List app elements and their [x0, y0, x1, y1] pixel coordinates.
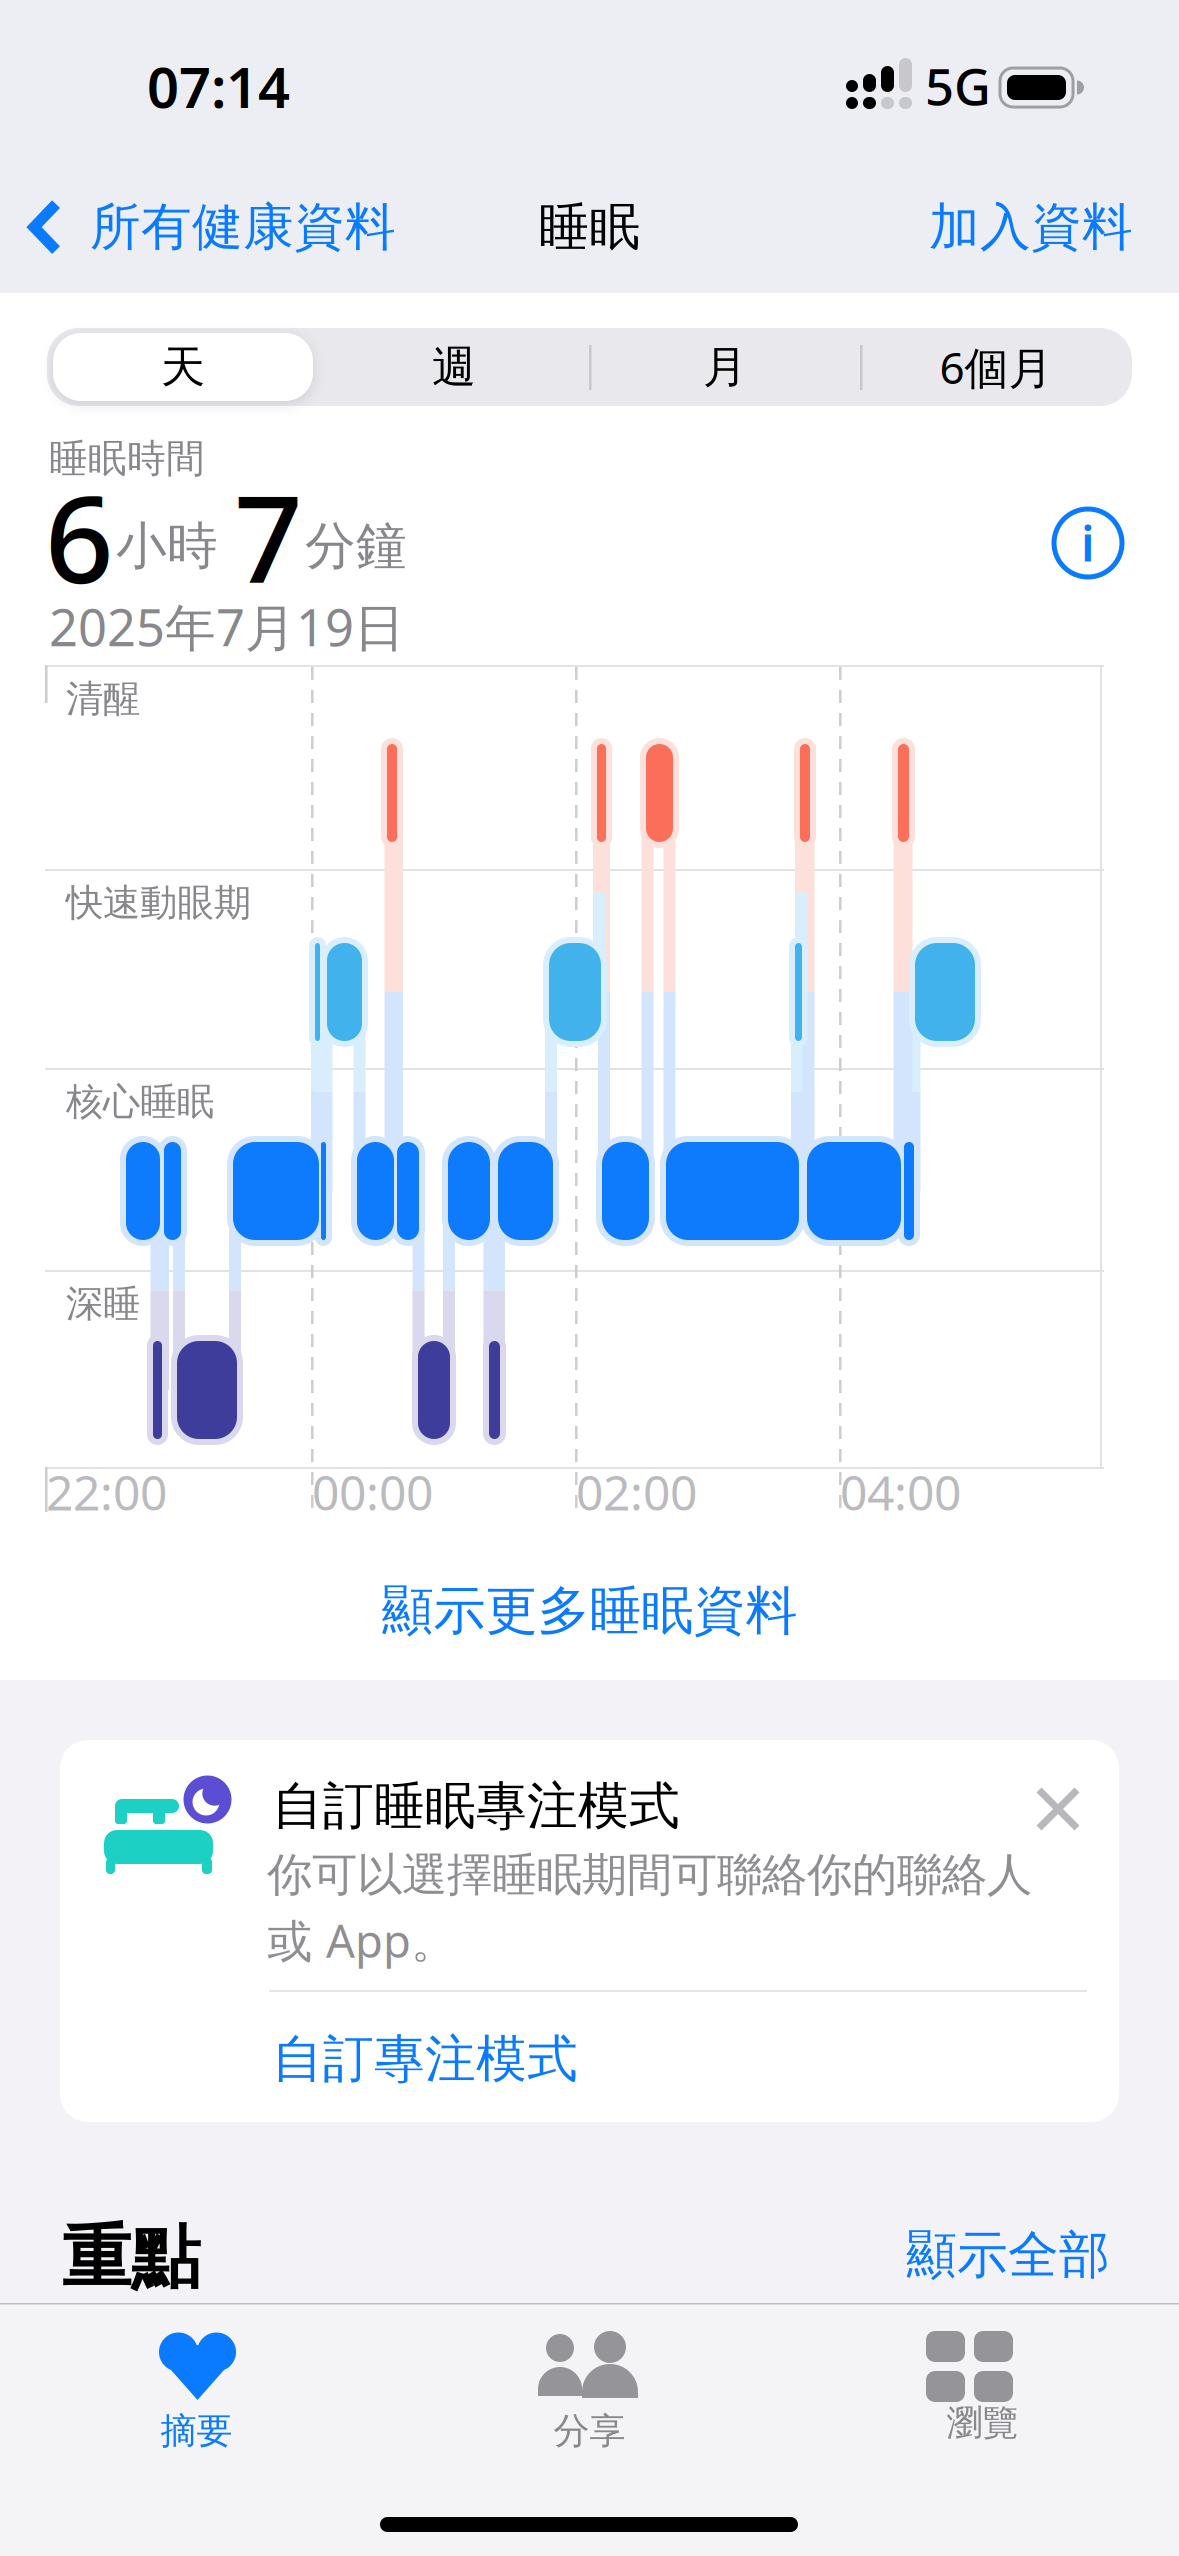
- button[interactable]: 顯示更多睡眠資料: [381, 1579, 797, 1643]
- staticText: 小時: [116, 515, 218, 577]
- staticText: 分享: [553, 2409, 625, 2453]
- staticText: 清醒: [66, 676, 140, 722]
- staticText: 07:14: [147, 49, 290, 123]
- button[interactable]: 天: [53, 328, 313, 406]
- staticText: 7: [234, 457, 303, 616]
- staticText: 顯示更多睡眠資料: [381, 1579, 797, 1643]
- staticText: 摘要: [160, 2409, 232, 2453]
- button[interactable]: 關閉: [1035, 1786, 1081, 1832]
- button[interactable]: 週: [324, 328, 584, 406]
- staticText: 00:00: [312, 1460, 433, 1524]
- staticText: 瀏覽: [946, 2401, 1018, 2445]
- button[interactable]: 摘要: [0, 2304, 393, 2556]
- staticText: 顯示全部: [906, 2224, 1110, 2286]
- button[interactable]: 分享: [393, 2304, 786, 2556]
- staticText: 重點: [62, 2215, 200, 2300]
- staticText: 快速動眼期: [66, 880, 251, 926]
- button[interactable]: 月: [595, 328, 855, 406]
- staticText: 5G: [925, 52, 991, 119]
- staticText: 睡眠時間: [49, 435, 205, 482]
- staticText: 或 App。: [267, 1910, 456, 1970]
- staticText: 核心睡眠: [66, 1079, 214, 1125]
- button[interactable]: 關於睡眠: [1051, 506, 1125, 580]
- button[interactable]: 瀏覽: [786, 2304, 1179, 2556]
- staticText: 睡眠: [538, 196, 640, 258]
- staticText: 04:00: [840, 1460, 961, 1524]
- staticText: 天: [161, 340, 205, 394]
- staticText: 你可以選擇睡眠期間可聯絡你的聯絡人: [267, 1847, 1032, 1903]
- button[interactable]: 6個月: [866, 328, 1126, 406]
- button[interactable]: 加入資料: [929, 196, 1133, 258]
- staticText: 月: [703, 340, 747, 394]
- staticText: 自訂專注模式: [272, 2028, 578, 2090]
- staticText: 週: [432, 340, 476, 394]
- button[interactable]: 所有健康資料: [30, 196, 396, 258]
- staticText: i: [1081, 511, 1095, 575]
- button[interactable]: 自訂專注模式: [272, 2028, 578, 2090]
- staticText: 自訂睡眠專注模式: [272, 1775, 680, 1837]
- staticText: 6個月: [939, 338, 1052, 396]
- staticText: 02:00: [576, 1460, 697, 1524]
- staticText: 分鐘: [305, 515, 407, 577]
- staticText: 加入資料: [929, 196, 1133, 258]
- staticText: 2025年7月19日: [49, 593, 405, 660]
- button[interactable]: 顯示全部: [906, 2224, 1110, 2286]
- staticText: 所有健康資料: [90, 196, 396, 258]
- staticText: 深睡: [66, 1281, 140, 1327]
- staticText: 6: [45, 457, 114, 616]
- staticText: 22:00: [46, 1460, 167, 1524]
